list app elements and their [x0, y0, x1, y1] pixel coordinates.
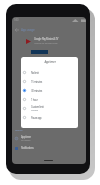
- staticText: Custom limit: [31, 105, 44, 109]
- staticText: Choose: [31, 109, 38, 112]
- staticText: No limit: [31, 71, 39, 75]
- button[interactable]: Back: [12, 25, 21, 35]
- staticText: App timer: [21, 135, 31, 139]
- staticText: App usage: [21, 28, 35, 32]
- button[interactable]: Notifications: [15, 146, 86, 150]
- staticText: Pause app: [31, 116, 42, 120]
- staticText: App timer: [44, 60, 56, 64]
- staticText: 1 hour: [31, 98, 38, 102]
- button[interactable]: No limit: [21, 68, 78, 77]
- button[interactable]: 15 minutes: [21, 77, 78, 86]
- staticText: 9:30: [14, 18, 19, 22]
- staticText: Notifications: [21, 146, 34, 150]
- button[interactable]: Pause app: [21, 113, 78, 122]
- staticText: Google Play Movies & TV: [34, 37, 59, 41]
- button[interactable]: App timer: [15, 135, 86, 142]
- staticText: 15 minutes: [31, 80, 43, 84]
- staticText: 30 minutes: [21, 139, 31, 142]
- staticText: Settings: [15, 128, 23, 131]
- staticText: 30 minutes: [31, 89, 43, 93]
- staticText: Used for 25 minutes today: [34, 42, 58, 45]
- button[interactable]: 30 minutes: [21, 86, 78, 95]
- button[interactable]: Custom limit: [21, 104, 78, 113]
- button[interactable]: 1 hour: [21, 95, 78, 104]
